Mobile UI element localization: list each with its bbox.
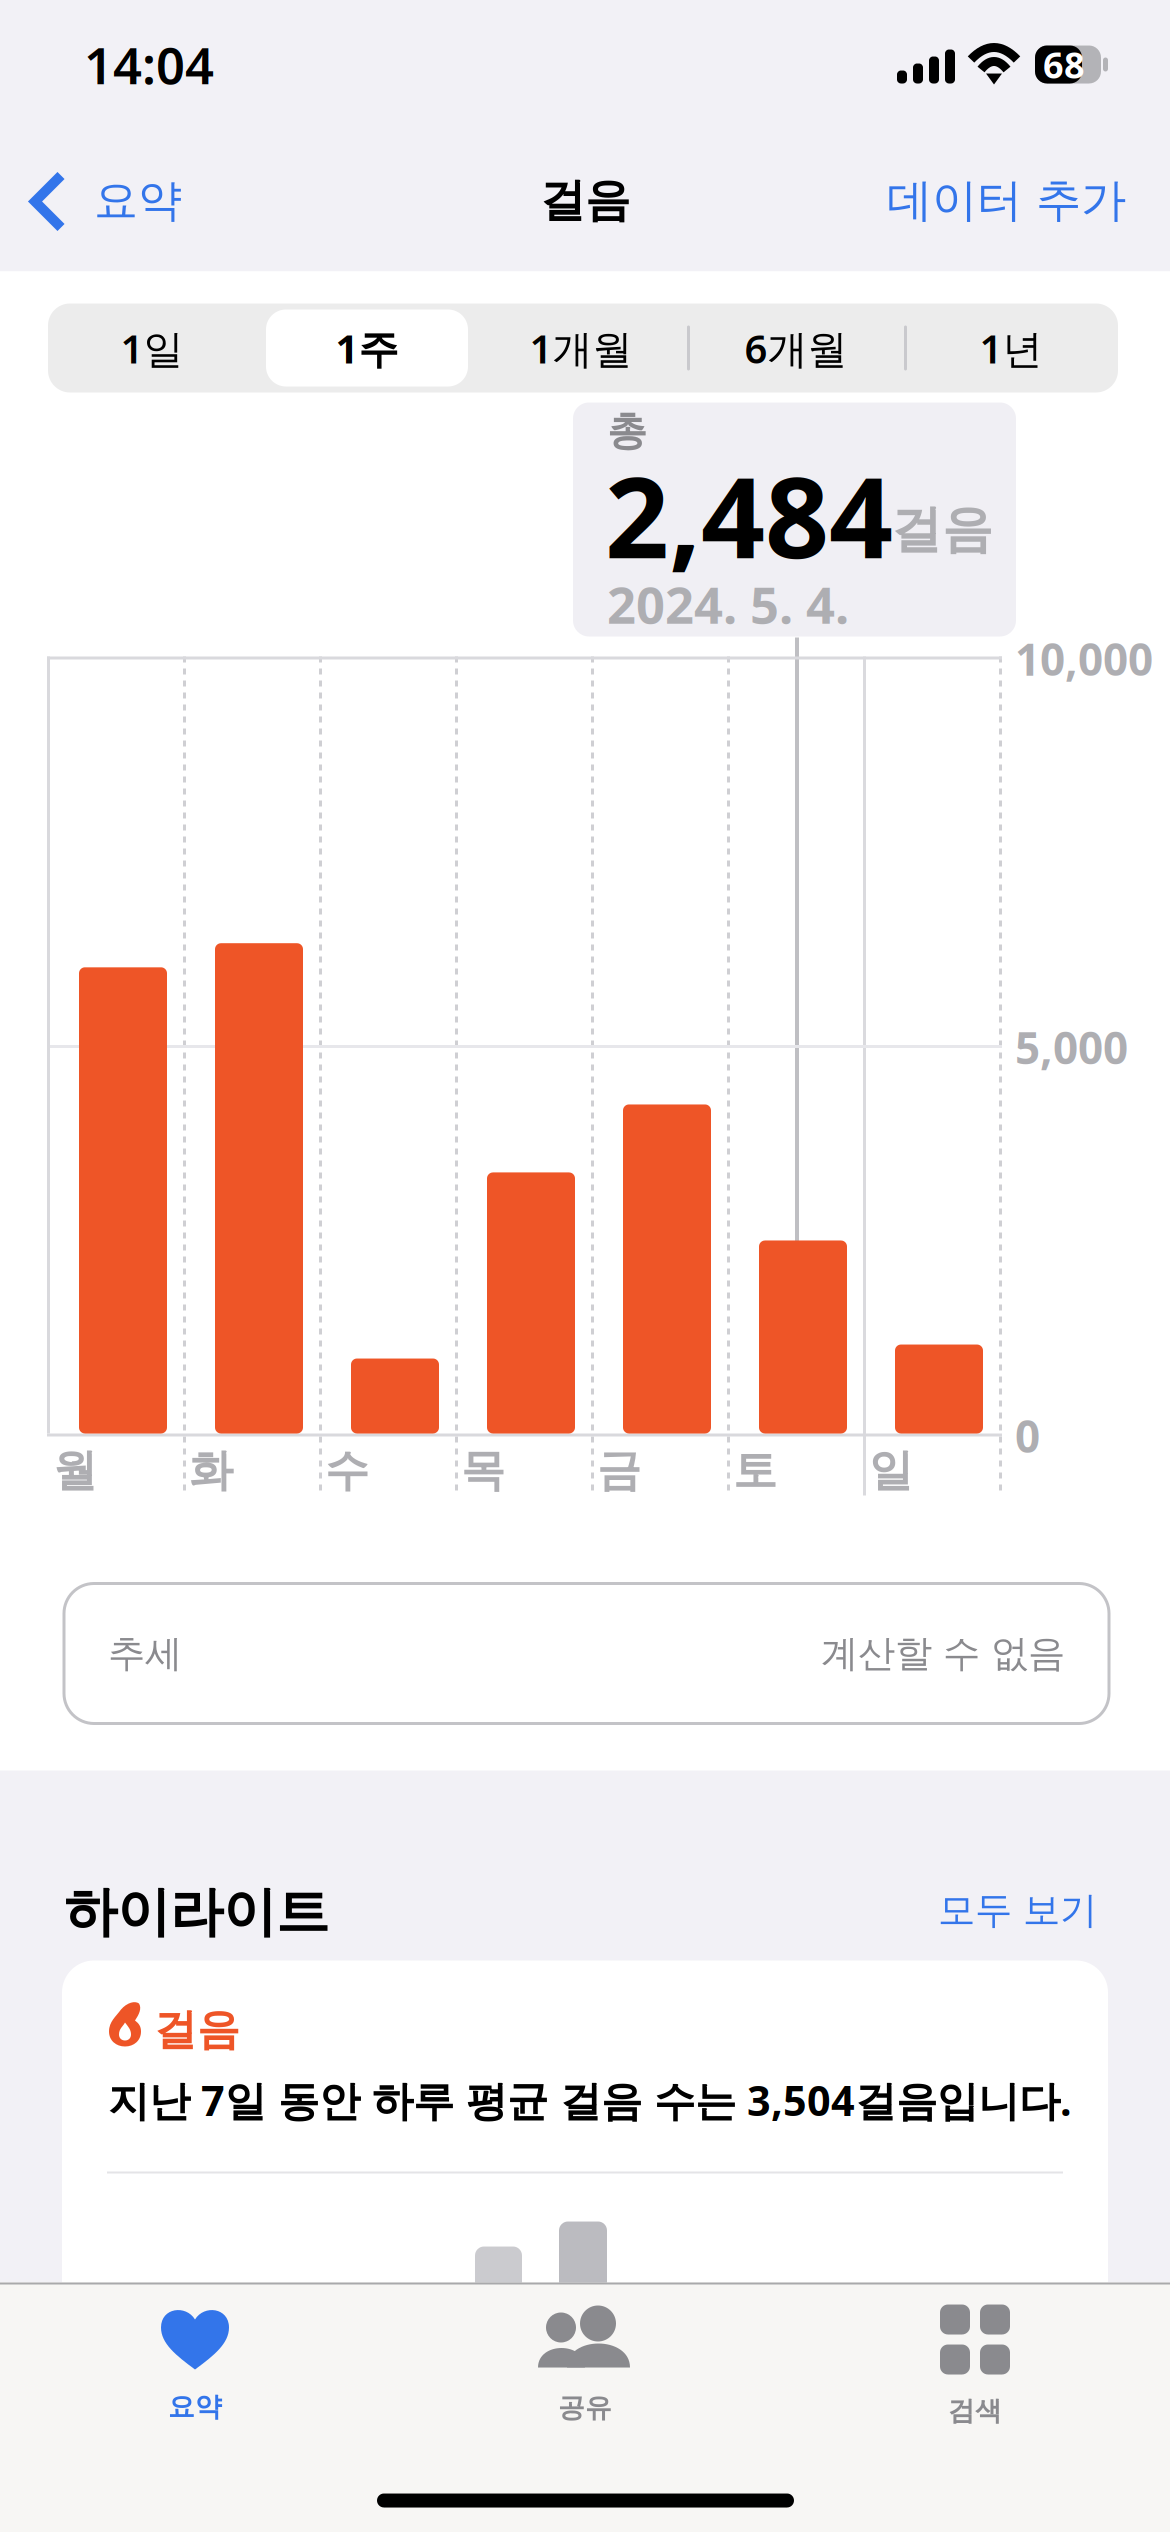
button[interactable]: 1년 [904, 303, 1117, 392]
staticText: 계산할 수 없음 [821, 1631, 1065, 1676]
button[interactable]: 요약 [0, 2282, 390, 2452]
button[interactable]: 공유 [390, 2282, 780, 2452]
staticText: 금 [597, 1443, 641, 1497]
staticText: 걸음 [891, 498, 993, 561]
staticText: 걸음 [540, 173, 630, 228]
button[interactable]: 모두 보기 [938, 1887, 1097, 1933]
button[interactable]: 1일 [42, 303, 261, 392]
staticText: 수 [325, 1443, 369, 1497]
staticText: 데이터 추가 [887, 173, 1126, 228]
staticText: 5,000 [1015, 1018, 1128, 1076]
staticText: 토 [733, 1443, 777, 1497]
staticText: 일 [869, 1443, 913, 1497]
staticText: 모두 보기 [938, 1887, 1097, 1933]
staticText: 68 [1043, 41, 1085, 88]
button[interactable]: 6개월 [687, 303, 904, 392]
staticText: 지난 7일 동안 하루 평균 걸음 수는 3,504걸음입니다. [108, 2072, 1072, 2127]
staticText: 하이라이트 [64, 1879, 329, 1945]
staticText: 걸음 [154, 2003, 240, 2056]
staticText: 월 [53, 1443, 97, 1497]
staticText: 총 [607, 406, 647, 456]
staticText: 0 [1015, 1406, 1040, 1465]
staticText: 검색 [948, 2394, 1002, 2427]
staticText: 1년 [979, 321, 1042, 374]
staticText: 1일 [120, 321, 183, 374]
button[interactable]: 걸음 [62, 1960, 1108, 2360]
button[interactable]: 데이터 추가 [871, 145, 1170, 255]
staticText: 요약 [94, 173, 182, 227]
staticText: 추세 [108, 1631, 182, 1676]
staticText: 6개월 [744, 321, 847, 374]
staticText: 화 [189, 1443, 233, 1497]
staticText: 1개월 [529, 321, 632, 374]
staticText: 공유 [558, 2391, 612, 2424]
staticText: 요약 [168, 2390, 222, 2423]
staticText: 1주 [335, 321, 398, 374]
staticText: 2,484 [605, 440, 893, 589]
button[interactable]: 검색 [780, 2282, 1170, 2452]
button[interactable]: 1개월 [471, 303, 690, 392]
staticText: 14:04 [84, 31, 214, 98]
button[interactable]: 요약 [0, 140, 198, 260]
staticText: 2024. 5. 4. [607, 570, 849, 638]
staticText: 10,000 [1015, 629, 1153, 688]
staticText: 목 [461, 1443, 505, 1497]
button[interactable]: 1주 [266, 303, 468, 392]
